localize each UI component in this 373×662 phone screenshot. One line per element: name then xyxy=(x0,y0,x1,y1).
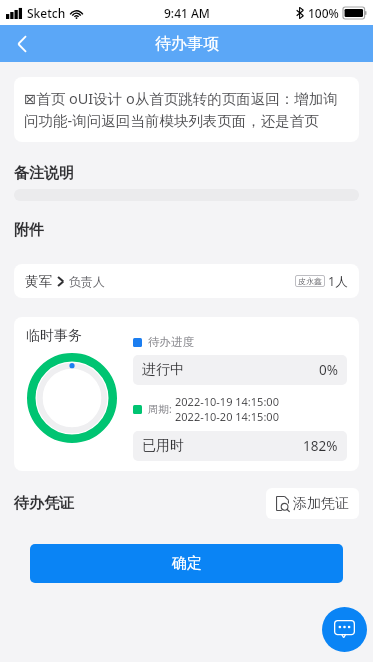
button[interactable]: 添加凭证 xyxy=(266,488,359,519)
staticText: 备注说明 xyxy=(14,164,74,183)
staticText: 2022-10-20 14:15:00 xyxy=(175,409,279,424)
staticText: Sketch xyxy=(27,5,66,21)
staticText: 临时事务 xyxy=(26,327,82,345)
staticText: 9:41 AM xyxy=(164,5,210,21)
staticText: 添加凭证 xyxy=(293,495,349,513)
staticText: 皮永鑫 xyxy=(298,276,322,286)
button[interactable]: Back xyxy=(0,25,44,62)
button[interactable]: 确定 xyxy=(30,544,343,583)
staticText: 已用时 xyxy=(142,437,184,455)
button[interactable]: 临时事务 xyxy=(14,317,359,471)
staticText: ⊠首页 oUI设计 o从首页跳转的页面返回：增加询问功能-询问返回当前模块列表页… xyxy=(24,88,349,131)
staticText: 100% xyxy=(308,5,339,21)
button[interactable]: 黄军 xyxy=(14,264,359,298)
staticText: 附件 xyxy=(14,221,44,240)
staticText: 负责人 xyxy=(69,274,105,289)
staticText: 0% xyxy=(319,361,338,379)
staticText: 周期: xyxy=(148,402,172,416)
staticText: 2022-10-19 14:15:00 xyxy=(175,394,279,409)
staticText: 182% xyxy=(303,437,338,455)
staticText: 1人 xyxy=(328,273,348,290)
staticText: 进行中 xyxy=(142,361,184,379)
staticText: 确定 xyxy=(172,554,202,573)
button[interactable]: ⊠首页 oUI设计 o从首页跳转的页面返回：增加询问功能-询问返回当前模块列表页… xyxy=(14,77,359,142)
button[interactable]: Chat xyxy=(322,607,367,652)
staticText: 待办事项 xyxy=(155,34,219,54)
staticText: 黄军 xyxy=(25,273,52,290)
staticText: 待办进度 xyxy=(148,335,194,349)
staticText: 待办凭证 xyxy=(14,494,74,513)
